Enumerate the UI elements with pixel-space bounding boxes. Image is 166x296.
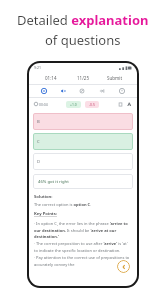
staticText: Key Points: [34, 211, 57, 217]
button[interactable]: Back [117, 260, 130, 273]
staticText: Detailed explanation [17, 11, 149, 29]
button[interactable]: B [33, 113, 133, 130]
staticText: C [37, 139, 40, 145]
button[interactable]: Bookmark [34, 85, 53, 97]
staticText: The correct option is option C. [34, 202, 92, 207]
staticText: 01:14 [45, 75, 57, 81]
staticText: 11/25 [77, 75, 89, 81]
button[interactable]: Bookmark [118, 102, 123, 107]
button[interactable]: Grid [72, 85, 92, 97]
staticText: 9:21 [34, 65, 41, 70]
button[interactable]: C [33, 133, 133, 150]
button[interactable]: Sound [53, 85, 72, 97]
button[interactable]: Submit [99, 72, 131, 84]
staticText: B [37, 119, 40, 125]
staticText: · In option C, the error lies in the phr… [34, 221, 132, 239]
staticText: of questions [45, 31, 121, 49]
staticText: · Pay attention to the correct use of pr… [34, 255, 132, 267]
button[interactable]: Info [112, 85, 132, 97]
button[interactable]: 46% got it right [33, 174, 133, 189]
button[interactable]: D [33, 153, 133, 170]
staticText: · The correct preposition to use after '… [34, 241, 132, 253]
staticText: D [37, 159, 41, 165]
staticText: -0.5 [89, 102, 95, 107]
button[interactable]: Next [92, 85, 112, 97]
button[interactable]: Translate [127, 102, 132, 107]
button[interactable]: +1.0 [70, 102, 77, 107]
staticText: 00:04 [39, 102, 48, 107]
button[interactable]: -0.5 [89, 102, 95, 107]
staticText: +1.0 [70, 102, 77, 107]
staticText: Solution: [34, 194, 53, 200]
staticText: Submit [107, 75, 123, 81]
staticText: 46% got it right [38, 179, 69, 185]
